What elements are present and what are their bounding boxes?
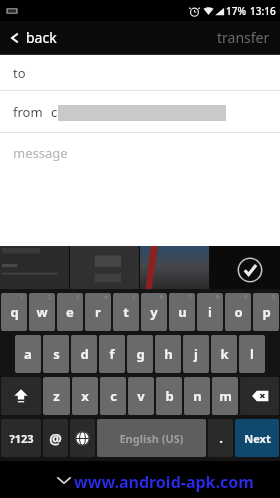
staticText: c <box>110 387 117 405</box>
button[interactable] <box>70 246 139 289</box>
button[interactable]: Hide keyboard <box>48 464 80 496</box>
button[interactable]: k <box>211 335 237 373</box>
button[interactable]: y <box>141 293 167 331</box>
button[interactable]: @ <box>43 419 68 457</box>
button[interactable]: q <box>1 293 27 331</box>
staticText: y <box>150 303 158 321</box>
staticText: n <box>193 387 202 405</box>
button[interactable] <box>140 246 209 289</box>
staticText: 6 <box>160 293 164 301</box>
button[interactable]: o <box>225 293 251 331</box>
staticText: u <box>178 303 187 321</box>
staticText: 5 <box>132 293 136 301</box>
staticText: 9 <box>244 293 248 301</box>
button[interactable]: English (US) <box>97 419 206 457</box>
button[interactable]: message <box>0 133 280 246</box>
button[interactable]: j <box>183 335 209 373</box>
button[interactable]: l <box>239 335 265 373</box>
button[interactable]: n <box>184 377 210 415</box>
staticText: v <box>137 387 145 405</box>
staticText: message <box>13 144 68 162</box>
button[interactable]: ?123 <box>1 419 41 457</box>
staticText: from <box>13 103 43 121</box>
staticText: Next <box>244 431 271 446</box>
staticText: b <box>165 387 174 405</box>
staticText: s <box>53 345 60 363</box>
staticText: h <box>164 345 173 363</box>
button[interactable]: Change language <box>70 419 95 457</box>
button[interactable]: Shift <box>1 377 41 415</box>
staticText: 2 <box>48 293 52 301</box>
button[interactable]: s <box>43 335 69 373</box>
staticText: e <box>66 303 74 321</box>
button[interactable]: c <box>100 377 126 415</box>
staticText: z <box>53 387 60 405</box>
staticText: o <box>234 303 243 321</box>
staticText: www.android-apk.com <box>74 471 254 493</box>
staticText: d <box>80 345 89 363</box>
staticText: j <box>194 345 198 363</box>
button[interactable]: e <box>57 293 83 331</box>
button[interactable]: g <box>127 335 153 373</box>
button[interactable]: to <box>0 55 280 90</box>
staticText: 13:16 <box>250 4 276 18</box>
staticText: ?123 <box>9 431 34 446</box>
staticText: w <box>36 303 48 321</box>
staticText: @ <box>49 429 62 448</box>
button[interactable]: Selected photo <box>210 246 280 289</box>
staticText: 8 <box>216 293 220 301</box>
staticText: . <box>219 429 223 447</box>
staticText: back <box>26 28 57 47</box>
staticText: a <box>24 345 32 363</box>
staticText: l <box>250 345 254 363</box>
button[interactable]: f <box>99 335 125 373</box>
button[interactable]: d <box>71 335 97 373</box>
staticText: 17% <box>226 4 246 18</box>
staticText: to <box>13 64 26 82</box>
button[interactable]: x <box>72 377 98 415</box>
staticText: 3 <box>76 293 80 301</box>
staticText: 1 <box>20 293 24 301</box>
staticText: 4 <box>104 293 108 301</box>
button[interactable]: t <box>113 293 139 331</box>
staticText: c <box>51 103 58 121</box>
button[interactable]: Next <box>235 419 279 457</box>
staticText: r <box>95 303 101 321</box>
staticText: t <box>123 303 129 321</box>
button[interactable] <box>0 246 69 289</box>
staticText: 0 <box>272 293 276 301</box>
staticText: p <box>262 303 271 321</box>
staticText: English (US) <box>119 431 184 446</box>
staticText: q <box>10 303 19 321</box>
staticText: m <box>219 387 232 405</box>
button[interactable]: back <box>0 24 69 51</box>
button[interactable]: Backspace <box>240 377 279 415</box>
staticText: f <box>109 345 115 363</box>
button[interactable]: from <box>0 91 280 132</box>
staticText: i <box>208 303 212 321</box>
button[interactable]: p <box>253 293 279 331</box>
button[interactable]: . <box>208 419 233 457</box>
button[interactable]: h <box>155 335 181 373</box>
staticText: 7 <box>188 293 192 301</box>
button[interactable]: a <box>15 335 41 373</box>
staticText: g <box>136 345 145 363</box>
button[interactable]: u <box>169 293 195 331</box>
button[interactable]: transfer <box>207 22 280 53</box>
button[interactable]: r <box>85 293 111 331</box>
button[interactable]: m <box>212 377 238 415</box>
staticText: transfer <box>217 28 270 47</box>
button[interactable]: v <box>128 377 154 415</box>
button[interactable]: w <box>29 293 55 331</box>
staticText: k <box>220 345 229 363</box>
staticText: x <box>81 387 89 405</box>
button[interactable]: b <box>156 377 182 415</box>
button[interactable]: z <box>43 377 70 415</box>
button[interactable]: i <box>197 293 223 331</box>
